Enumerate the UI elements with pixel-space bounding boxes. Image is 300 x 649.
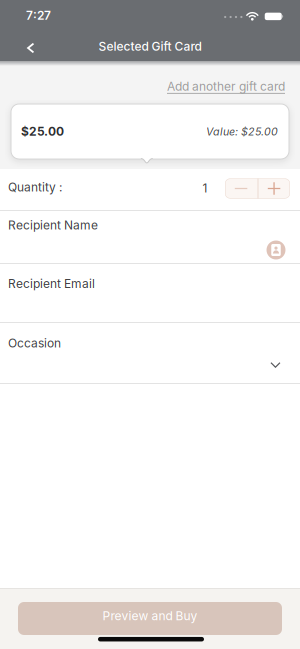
button[interactable]: Preview and Buy	[18, 602, 282, 635]
staticText: Add another gift card	[167, 79, 285, 94]
button[interactable]: Choose occasion	[0, 323, 300, 383]
button[interactable]: Add another gift card	[167, 79, 285, 94]
staticText: 7:27	[26, 8, 51, 22]
button[interactable]: Decrease quantity	[225, 178, 257, 198]
button[interactable]: Choose recipient from contacts	[266, 240, 285, 259]
staticText: $25.00	[21, 124, 64, 139]
staticText: Occasion	[8, 336, 61, 350]
staticText: Value: $25.00	[206, 125, 278, 138]
staticText: Preview and Buy	[102, 609, 197, 623]
button[interactable]: Back	[0, 33, 51, 63]
button[interactable]: Increase quantity	[258, 178, 290, 198]
staticText: Recipient Name	[8, 218, 98, 232]
staticText: Recipient Email	[8, 276, 95, 291]
staticText: 1	[202, 181, 207, 195]
staticText: Selected Gift Card	[98, 39, 201, 54]
staticText: Quantity :	[8, 180, 62, 194]
